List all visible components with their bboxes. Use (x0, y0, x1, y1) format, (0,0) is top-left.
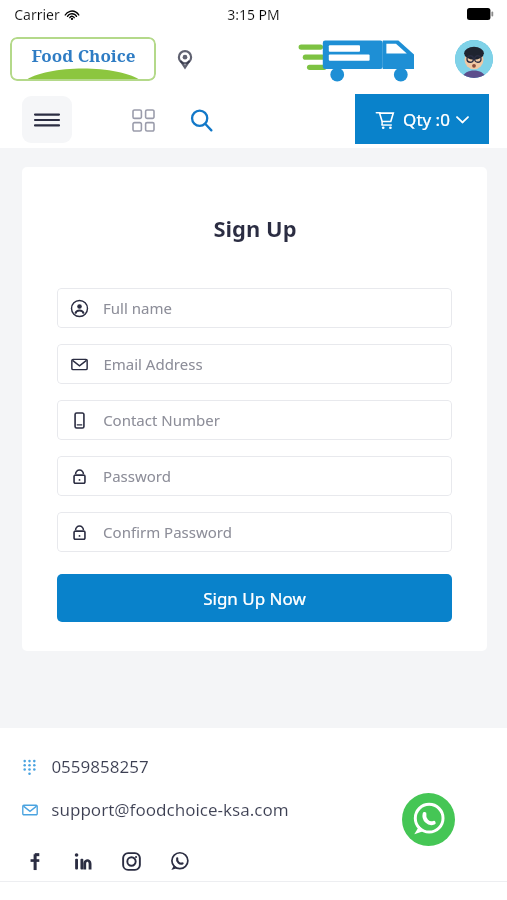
button[interactable]: Profile (455, 40, 493, 78)
staticText: Full name (103, 298, 172, 318)
button[interactable]: Categories (124, 101, 162, 139)
button[interactable]: LinkedIn (65, 843, 101, 879)
button[interactable]: Sign Up Now (57, 574, 452, 622)
button[interactable]: support@foodchoice-ksa.com (22, 798, 289, 821)
button[interactable]: Search (182, 101, 220, 139)
staticText: Password (103, 466, 171, 486)
button[interactable]: Facebook (17, 843, 53, 879)
button[interactable]: Qty :0 (355, 94, 489, 144)
staticText: Email Address (103, 354, 203, 374)
button[interactable]: WhatsApp (161, 843, 197, 879)
button[interactable]: Food Choice home (10, 37, 156, 81)
staticText: Food Choice (31, 44, 136, 67)
staticText: Contact Number (103, 410, 220, 430)
button[interactable]: Location (170, 44, 200, 74)
staticText: Confirm Password (103, 522, 232, 542)
button[interactable]: Menu (22, 96, 72, 143)
staticText: 0559858257 (51, 755, 149, 778)
button[interactable]: Instagram (113, 843, 149, 879)
button[interactable]: Chat on WhatsApp (402, 793, 455, 846)
button[interactable]: Contact Number (57, 400, 452, 440)
staticText: Carrier (14, 5, 60, 24)
button[interactable]: Confirm Password (57, 512, 452, 552)
button[interactable]: Full name (57, 288, 452, 328)
button[interactable]: 0559858257 (22, 755, 149, 778)
button[interactable]: Email Address (57, 344, 452, 384)
button[interactable]: Password (57, 456, 452, 496)
staticText: 3:15 PM (227, 5, 280, 24)
staticText: support@foodchoice-ksa.com (51, 798, 289, 821)
staticText: Qty :0 (403, 108, 450, 131)
staticText: Sign Up Now (203, 587, 306, 610)
staticText: Sign Up (213, 213, 297, 243)
